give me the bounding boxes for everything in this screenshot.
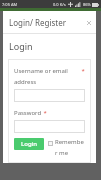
button[interactable]: Close	[84, 18, 93, 27]
button[interactable]: Remember me	[48, 138, 85, 157]
staticText: Password	[14, 109, 42, 117]
staticText: Remember me	[55, 138, 85, 157]
staticText: 7:05 AM	[2, 2, 18, 7]
button[interactable]: Login	[14, 138, 44, 150]
staticText: Login/ Register	[9, 17, 67, 28]
staticText: *	[80, 67, 85, 75]
staticText: Login	[21, 140, 37, 148]
staticText: 0.0 K/s	[53, 2, 66, 7]
staticText: 86%	[83, 2, 91, 7]
staticText: Username or email address	[14, 67, 80, 86]
button[interactable]: Username or email address input	[14, 89, 85, 102]
button[interactable]: Password input	[14, 120, 85, 133]
staticText: *	[42, 109, 47, 117]
staticText: Login	[9, 40, 33, 52]
